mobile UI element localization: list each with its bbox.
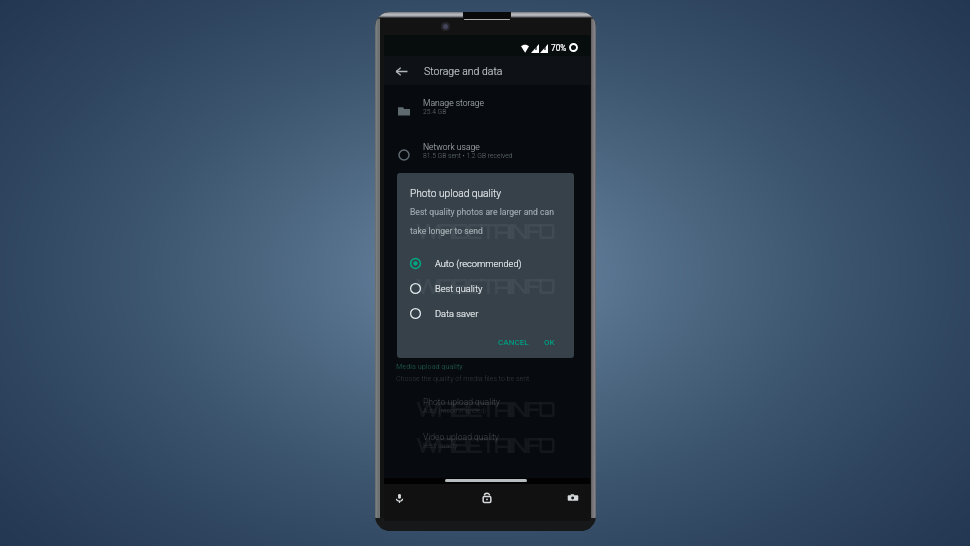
button[interactable]: Camera [566,491,580,505]
staticText: Storage and data [424,65,503,77]
button[interactable]: Video upload quality [384,432,590,456]
staticText: Best quality [423,442,458,450]
staticText: Data saver [435,308,479,319]
button[interactable]: Photo upload quality [384,397,590,421]
staticText: Best quality photos are larger and can t… [410,207,566,236]
button[interactable]: CANCEL [490,331,537,352]
button[interactable]: OK [536,331,563,352]
staticText: Photo upload quality [410,188,502,200]
staticText: Choose the quality of media files to be … [396,374,530,382]
button[interactable]: Data saver [397,301,574,326]
button[interactable]: Network usage [384,141,590,167]
staticText: WABETAINFO [416,432,554,458]
staticText: OK [544,337,555,346]
staticText: Best quality [435,283,483,294]
button[interactable]: Lock [479,490,494,505]
staticText: WABETAINFO [416,218,554,244]
button[interactable]: Best quality [397,276,574,301]
staticText: WABETAINFO [416,396,554,422]
staticText: Video upload quality [423,432,499,442]
staticText: Media upload quality [396,362,463,370]
button[interactable]: Back [390,60,412,82]
staticText: Auto (recommended) [423,407,487,415]
button[interactable]: Voice assistant [392,491,406,505]
staticText: 25.4 GB [423,108,447,116]
staticText: WABETAINFO [416,273,554,299]
staticText: 70% [551,43,567,53]
staticText: 81.5 GB sent • 1.2 GB received [423,152,513,160]
button[interactable]: Manage storage [384,97,590,123]
staticText: Manage storage [423,98,485,108]
staticText: Photo upload quality [423,397,500,407]
staticText: Auto (recommended) [435,258,522,269]
staticText: CANCEL [498,337,529,346]
button[interactable]: Auto (recommended) [397,251,574,276]
staticText: Network usage [423,142,480,152]
